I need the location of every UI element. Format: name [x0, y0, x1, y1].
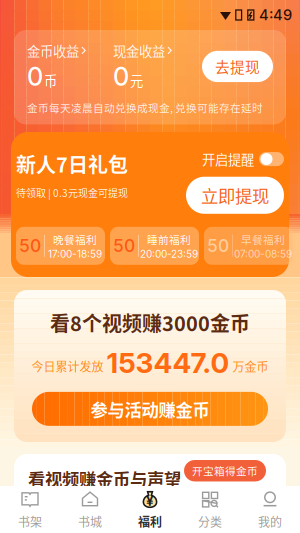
button[interactable]: 分类 [180, 486, 240, 533]
staticText: 书城 [78, 513, 102, 530]
staticText: 立即提现 [201, 183, 269, 208]
staticText: 17:00-18:59 [48, 248, 102, 260]
staticText: 参与活动赚金币 [90, 396, 209, 421]
staticText: 晚餐福利 [53, 231, 97, 247]
button[interactable]: 金币收益 [27, 41, 113, 92]
staticText: 0 [27, 61, 43, 92]
staticText: 4:49 [259, 6, 292, 24]
button[interactable]: ¥ [120, 486, 180, 533]
button[interactable]: 书城 [60, 486, 120, 533]
staticText: 福利 [138, 513, 162, 530]
staticText: 50 [19, 235, 41, 256]
staticText: 睡前福利 [147, 231, 191, 247]
button[interactable]: 现金收益 [113, 41, 199, 92]
staticText: 20:00-23:59 [140, 248, 198, 260]
button[interactable]: 书架 [0, 486, 60, 533]
staticText: ¥ [146, 493, 154, 509]
staticText: 153447.0 [106, 346, 229, 380]
staticText: 50 [113, 235, 135, 256]
staticText: 现金收益 [113, 41, 165, 60]
staticText: 去提现 [215, 56, 260, 77]
staticText: 看8个视频赚3000金币 [50, 308, 250, 337]
button[interactable]: 50 [16, 227, 105, 265]
staticText: 万金币 [232, 357, 268, 375]
button[interactable]: 50 [110, 227, 199, 265]
staticText: 金币每天凌晨自动兑换成现金, 兑换可能存在延时 [27, 100, 263, 115]
button[interactable]: 去提现 [202, 51, 273, 82]
staticText: 50 [207, 235, 229, 256]
button[interactable]: 我的 [240, 486, 300, 533]
staticText: 待领取 | 0.3元现金可提现 [16, 185, 128, 200]
staticText: 我的 [258, 513, 282, 530]
staticText: 金币收益 [27, 41, 79, 60]
staticText: 0 [113, 61, 129, 92]
staticText: 去开宝箱 [191, 483, 259, 508]
button[interactable]: 立即提现 [186, 177, 284, 214]
staticText: 元 [130, 71, 143, 90]
button[interactable]: 参与活动赚金币 [32, 380, 268, 426]
staticText: 早餐福利 [241, 231, 285, 247]
staticText: 分类 [198, 513, 222, 530]
staticText: 币 [44, 71, 57, 90]
staticText: 开启提醒 [202, 149, 254, 169]
staticText: 书架 [18, 513, 42, 530]
button[interactable]: 开启提醒 [202, 149, 284, 169]
staticText: 开宝箱得金币 [192, 463, 258, 478]
staticText: 今日累计发放 [31, 357, 103, 375]
staticText: 看视频赚金币与声望 [28, 466, 181, 491]
button[interactable]: 50 [204, 227, 293, 265]
staticText: 新人7日礼包 [16, 149, 128, 178]
staticText: 07:00-08:59 [234, 248, 292, 260]
